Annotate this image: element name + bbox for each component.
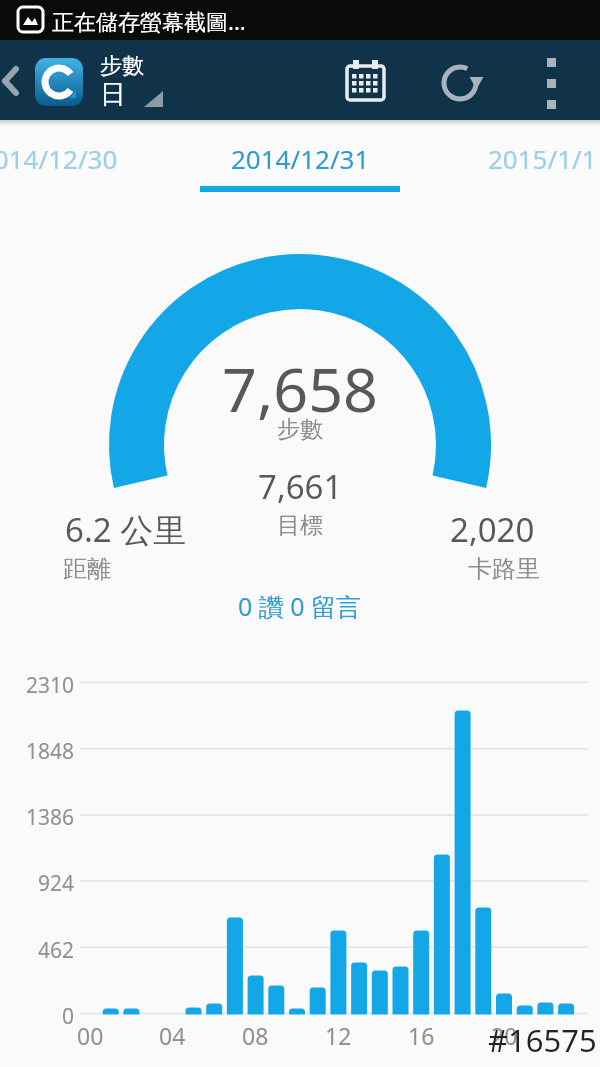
staticText: 20 bbox=[491, 1020, 518, 1051]
staticText: 2014/12/30 bbox=[0, 141, 118, 176]
staticText: 2,020 bbox=[450, 507, 535, 552]
button[interactable]: 2014/12/30 bbox=[0, 120, 158, 196]
staticText: 距離 bbox=[63, 554, 111, 584]
staticText: 步數 bbox=[100, 52, 144, 80]
button[interactable] bbox=[430, 50, 490, 110]
staticText: 00 bbox=[77, 1020, 104, 1051]
staticText: 2014/12/31 bbox=[231, 141, 370, 176]
staticText: 2015/1/1 bbox=[488, 141, 597, 176]
button[interactable]: 0 讚 0 留言 bbox=[210, 588, 390, 624]
staticText: 462 bbox=[38, 936, 75, 965]
staticText: #16575 bbox=[488, 1019, 597, 1061]
staticText: 16 bbox=[408, 1020, 435, 1051]
staticText: 1386 bbox=[26, 803, 75, 832]
button[interactable]: 2015/1/1 bbox=[432, 120, 600, 196]
button[interactable] bbox=[525, 50, 585, 110]
staticText: 0 讚 0 留言 bbox=[238, 589, 362, 623]
staticText: 目標 bbox=[277, 511, 323, 540]
staticText: 924 bbox=[38, 869, 75, 898]
staticText: 04 bbox=[159, 1020, 186, 1051]
staticText: 2310 bbox=[26, 671, 75, 700]
button[interactable] bbox=[335, 50, 395, 110]
button[interactable] bbox=[0, 40, 170, 120]
staticText: 7,661 bbox=[258, 464, 343, 509]
staticText: 步數 bbox=[277, 415, 323, 444]
staticText: 6.2 公里 bbox=[65, 507, 187, 552]
staticText: 卡路里 bbox=[468, 554, 540, 584]
staticText: 1848 bbox=[26, 737, 75, 766]
staticText: 12 bbox=[325, 1020, 352, 1051]
staticText: 7,658 bbox=[222, 347, 378, 430]
button[interactable]: 2014/12/31 bbox=[190, 120, 410, 196]
staticText: 正在儲存螢幕截圖... bbox=[52, 6, 246, 36]
staticText: 08 bbox=[242, 1020, 269, 1051]
staticText: 0 bbox=[62, 1002, 75, 1031]
staticText: 日 bbox=[100, 78, 126, 111]
